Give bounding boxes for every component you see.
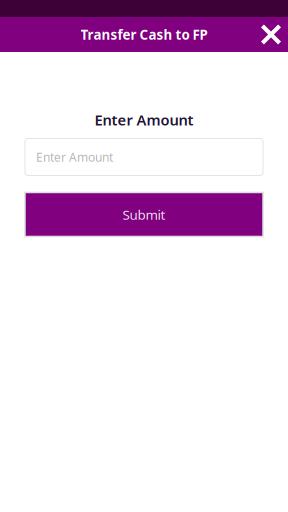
button[interactable]: Submit [25,192,263,236]
button[interactable]: Enter Amount [25,138,263,175]
staticText: Enter Amount [94,110,193,129]
button[interactable]: Close [261,17,281,52]
staticText: Enter Amount [36,149,113,165]
staticText: Transfer Cash to FP [80,26,207,43]
staticText: Submit [122,206,165,223]
